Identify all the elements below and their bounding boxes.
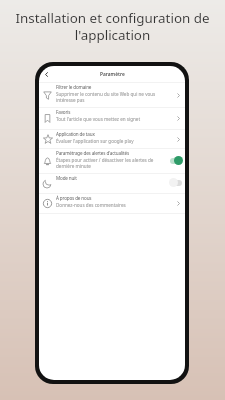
button[interactable]: Favoris bbox=[39, 108, 185, 129]
staticText: Favoris bbox=[56, 109, 71, 115]
staticText: Paramétrage des alertes d'actualités bbox=[56, 150, 129, 156]
button[interactable] bbox=[169, 178, 183, 187]
button[interactable]: Mode nuit bbox=[39, 174, 185, 193]
staticText: Donnez-nous des commentaires bbox=[56, 202, 126, 208]
button[interactable]: Paramétrage des alertes d'actualités bbox=[39, 149, 185, 173]
staticText: Application de taux bbox=[56, 131, 95, 137]
staticText: Tout l'article que vous mettez en signet bbox=[56, 116, 141, 122]
button[interactable]: Application de taux bbox=[39, 130, 185, 148]
staticText: Évaluer l'application sur google play bbox=[56, 138, 134, 144]
button[interactable]: Filtrer le domaine bbox=[39, 83, 185, 107]
staticText: intéresse pas bbox=[56, 97, 85, 103]
button[interactable]: À propos de nous bbox=[39, 194, 185, 213]
staticText: À propos de nous bbox=[56, 195, 92, 201]
staticText: Filtrer le domaine bbox=[56, 84, 92, 90]
button[interactable] bbox=[44, 72, 49, 77]
staticText: Supprimer le contenu du site Web qui ne … bbox=[56, 91, 156, 97]
staticText: Installation et configuration de l'appli… bbox=[0, 9, 225, 44]
staticText: Paramètre bbox=[100, 71, 125, 78]
staticText: Mode nuit bbox=[56, 175, 77, 181]
staticText: dernière minute bbox=[56, 163, 91, 169]
button[interactable] bbox=[169, 156, 183, 165]
staticText: Étapes pour activer / désactiver les ale… bbox=[56, 157, 154, 163]
